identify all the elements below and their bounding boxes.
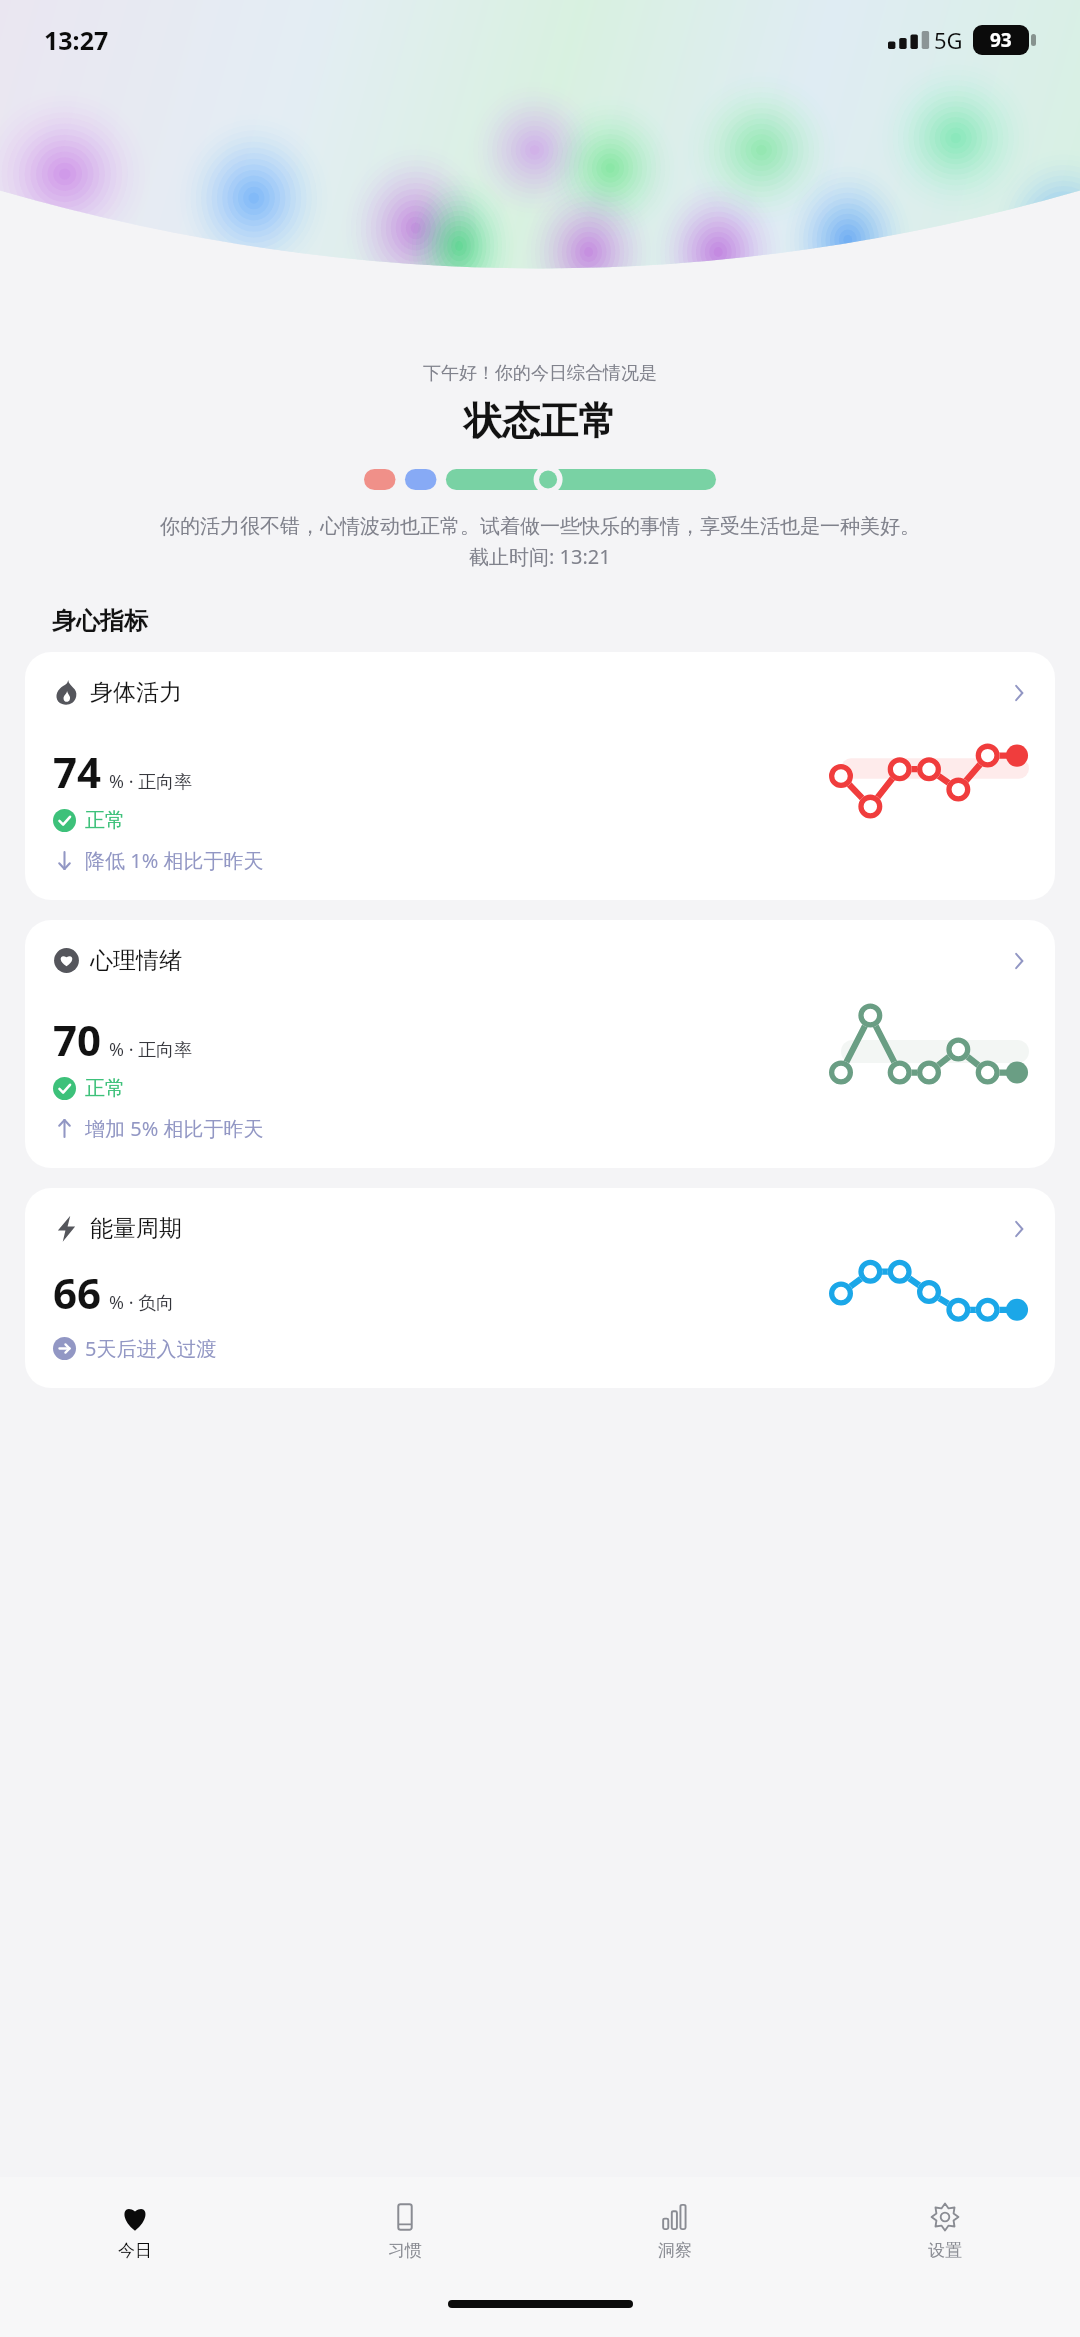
staticText: 93 (990, 27, 1012, 53)
button[interactable]: 洞察 (540, 2177, 810, 2285)
button[interactable]: 身体活力 (25, 652, 1055, 900)
staticText: 70 (53, 1011, 102, 1068)
button[interactable]: 能量周期 (25, 1188, 1055, 1388)
staticText: 身体活力 (90, 678, 182, 707)
staticText: 74 (53, 743, 102, 800)
staticText: 今日 (118, 2240, 152, 2261)
staticText: 降低 1% 相比于昨天 (85, 847, 264, 874)
staticText: 心理情绪 (90, 946, 182, 975)
other: 查看详情 (1007, 949, 1031, 973)
staticText: 5天后进入过渡 (85, 1335, 217, 1362)
other: 查看详情 (1007, 681, 1031, 705)
staticText: % · 正向率 (109, 1037, 193, 1062)
staticText: 下午好！你的今日综合情况是 (423, 362, 657, 385)
staticText: % · 正向率 (109, 769, 193, 794)
staticText: 状态正常 (464, 397, 616, 445)
button[interactable]: 习惯 (270, 2177, 540, 2285)
other: 查看详情 (1007, 1217, 1031, 1241)
staticText: 洞察 (658, 2240, 692, 2261)
staticText: 能量周期 (90, 1214, 182, 1243)
button[interactable]: 今日 (0, 2177, 270, 2285)
staticText: 66 (53, 1264, 102, 1321)
staticText: % · 负向 (109, 1290, 175, 1315)
staticText: 增加 5% 相比于昨天 (85, 1115, 264, 1142)
staticText: 你的活力很不错，心情波动也正常。试着做一些快乐的事情，享受生活也是一种美好。 (160, 514, 920, 539)
staticText: 设置 (928, 2240, 962, 2261)
staticText: 正常 (85, 1076, 125, 1101)
staticText: 习惯 (388, 2240, 422, 2261)
staticText: 5G (934, 25, 963, 55)
staticText: 截止时间: 13:21 (469, 543, 611, 570)
staticText: 13:27 (44, 23, 109, 57)
staticText: 身心指标 (52, 606, 148, 636)
button[interactable]: 设置 (810, 2177, 1080, 2285)
staticText: 正常 (85, 808, 125, 833)
button[interactable]: 心理情绪 (25, 920, 1055, 1168)
